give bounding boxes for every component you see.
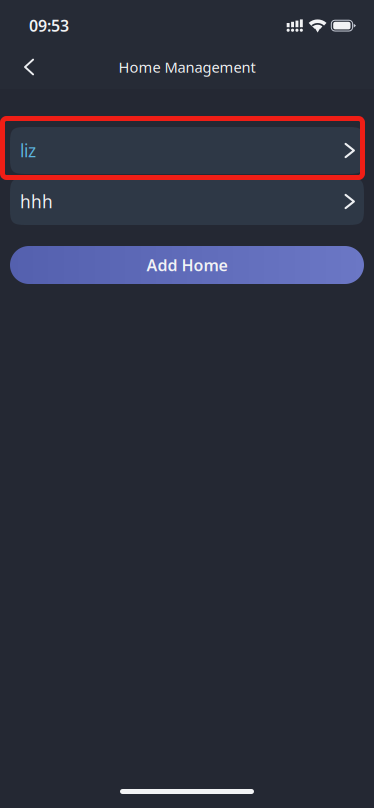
button[interactable]: Add Home [10,246,364,284]
staticText: Add Home [146,254,227,276]
staticText: liz [20,139,36,162]
button[interactable]: Back [0,45,50,89]
staticText: hhh [20,190,53,213]
button[interactable]: liz [10,127,364,174]
button[interactable]: hhh [10,178,364,225]
staticText: 09:53 [29,15,69,36]
staticText: Home Management [118,57,255,77]
